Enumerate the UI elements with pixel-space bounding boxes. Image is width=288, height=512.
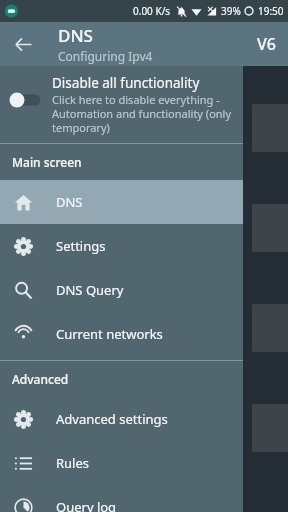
staticText: Configuring Ipv4 xyxy=(58,48,153,64)
staticText: DNS xyxy=(58,24,93,47)
button[interactable]: Query log xyxy=(0,485,243,512)
staticText: 0.00 K/s xyxy=(133,4,171,18)
button[interactable]: Back xyxy=(6,27,40,61)
staticText: Advanced settings xyxy=(56,410,168,428)
staticText: V6 xyxy=(257,33,276,55)
other: Battery xyxy=(244,6,254,16)
other: Signal xyxy=(206,6,217,17)
staticText: Settings xyxy=(56,237,106,255)
staticText: Query log xyxy=(56,498,117,512)
staticText: Advanced xyxy=(12,371,69,387)
staticText: Current networks xyxy=(56,325,163,343)
button[interactable]: DNS Query xyxy=(0,268,243,312)
button[interactable]: Current networks xyxy=(0,312,243,356)
staticText: 39% xyxy=(221,4,241,18)
button[interactable]: Rules xyxy=(0,441,243,485)
staticText: DNS xyxy=(56,193,83,211)
staticText: Rules xyxy=(56,454,90,472)
other: Silent xyxy=(176,6,187,17)
staticText: Main screen xyxy=(12,154,82,170)
button[interactable]: DNS xyxy=(0,180,243,224)
button[interactable]: Settings xyxy=(0,224,243,268)
staticText: Disable all functionality xyxy=(52,74,200,92)
button[interactable]: Disable all functionality xyxy=(0,66,243,143)
button[interactable]: V6 xyxy=(251,29,282,59)
staticText: DNS Query xyxy=(56,281,124,299)
button[interactable]: Advanced settings xyxy=(0,397,243,441)
other: Wifi xyxy=(191,6,202,17)
staticText: Click here to disable everything - Autom… xyxy=(52,92,232,135)
staticText: 19:50 xyxy=(258,4,284,18)
